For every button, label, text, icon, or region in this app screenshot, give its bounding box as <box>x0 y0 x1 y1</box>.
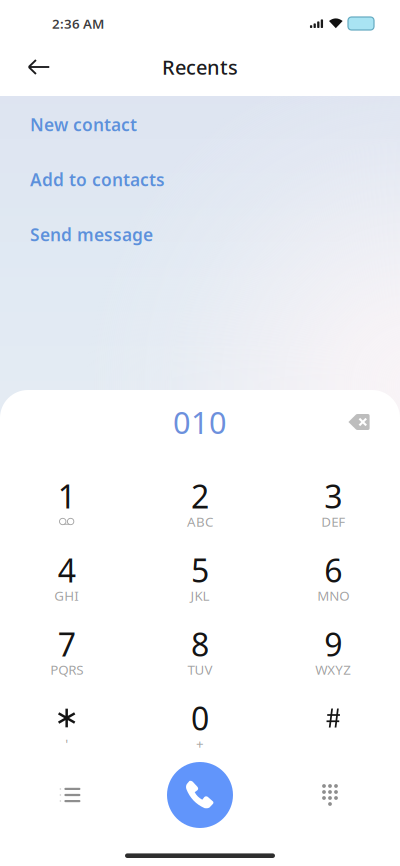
button[interactable] <box>267 676 400 750</box>
button[interactable]: 6 <box>267 528 400 602</box>
staticText: 0 <box>191 697 209 739</box>
staticText: Recents <box>162 54 238 80</box>
button[interactable]: 5 <box>133 528 267 602</box>
staticText: 9 <box>324 623 342 665</box>
button[interactable]: Back <box>17 45 61 89</box>
staticText: Add to contacts <box>30 168 165 191</box>
staticText: Send message <box>30 223 153 246</box>
staticText: ' <box>65 735 68 752</box>
staticText: MNO <box>317 587 349 604</box>
button[interactable]: 0 <box>133 676 267 750</box>
staticText: GHI <box>54 587 79 604</box>
button[interactable]: 9 <box>267 602 400 676</box>
staticText: 2:36 AM <box>52 15 104 32</box>
button[interactable]: 4 <box>0 528 133 602</box>
button[interactable]: New contact <box>0 97 400 152</box>
staticText: WXYZ <box>315 661 351 678</box>
staticText: + <box>196 735 204 752</box>
button[interactable]: 3 <box>267 454 400 528</box>
staticText: 1 <box>58 475 76 517</box>
staticText: 7 <box>58 623 76 665</box>
staticText: 4 <box>58 549 76 591</box>
button[interactable]: 1 <box>0 454 133 528</box>
button[interactable]: 7 <box>0 602 133 676</box>
button[interactable]: Keypad <box>295 760 365 830</box>
button[interactable]: 8 <box>133 602 267 676</box>
button[interactable]: ' <box>0 676 133 750</box>
staticText: 2 <box>191 475 209 517</box>
staticText: ABC <box>187 513 213 530</box>
staticText: 5 <box>191 549 209 591</box>
staticText: TUV <box>187 661 212 678</box>
staticText: 3 <box>324 475 342 517</box>
staticText: 6 <box>324 549 342 591</box>
button[interactable]: Delete <box>334 399 384 445</box>
staticText: JKL <box>190 587 209 604</box>
staticText: DEF <box>321 513 345 530</box>
button[interactable]: Call log <box>35 760 105 830</box>
button[interactable]: Call <box>165 760 235 830</box>
staticText: 8 <box>191 623 209 665</box>
button[interactable]: 2 <box>133 454 267 528</box>
staticText: 010 <box>173 402 227 442</box>
staticText: New contact <box>30 113 137 136</box>
button[interactable]: Add to contacts <box>0 152 400 207</box>
button[interactable]: Send message <box>0 207 400 262</box>
staticText: PQRS <box>50 661 83 678</box>
